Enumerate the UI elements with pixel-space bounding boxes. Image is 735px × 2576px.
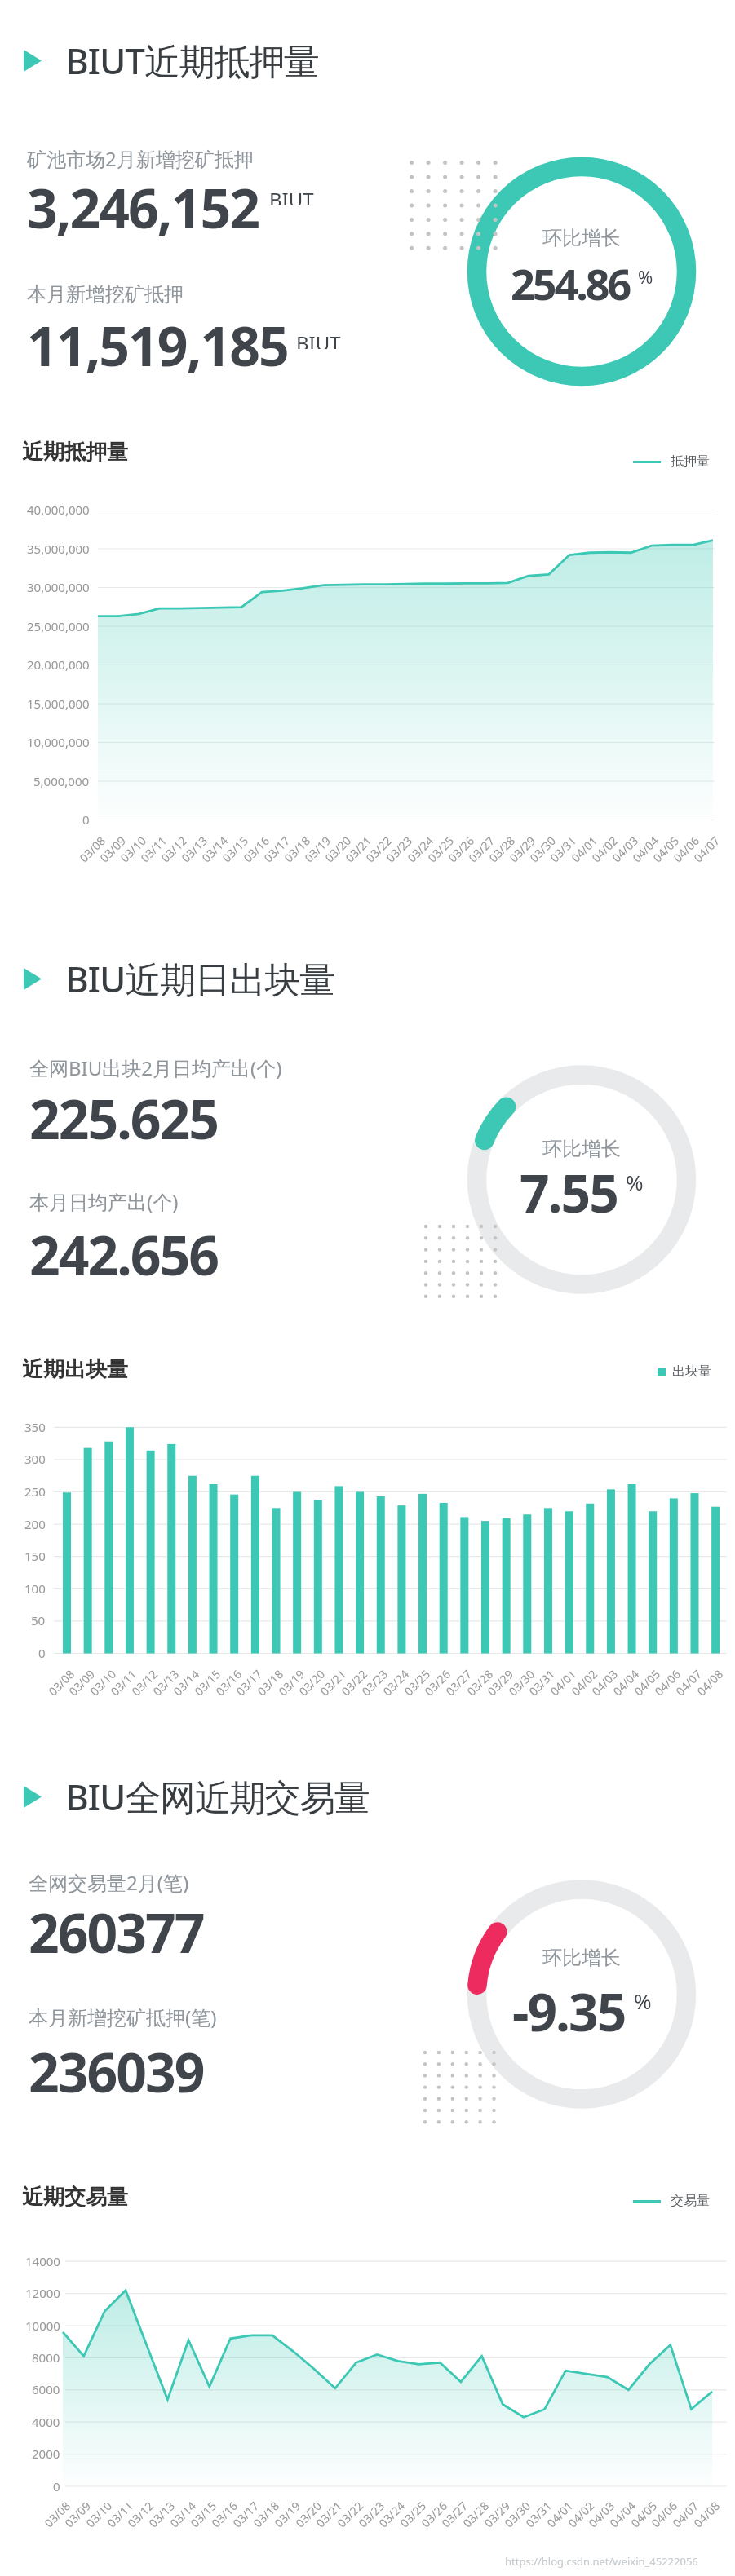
staticText: 04/04 — [629, 833, 661, 865]
staticText: 03/20 — [292, 2498, 324, 2530]
staticText: 交易量 — [671, 2193, 710, 2209]
staticText: 14000 — [25, 2253, 60, 2269]
staticText: 12000 — [25, 2285, 60, 2301]
staticText: 03/13 — [145, 2498, 178, 2530]
staticText: 03/22 — [362, 833, 395, 865]
staticText: 03/28 — [459, 2498, 492, 2530]
staticText: 03/29 — [481, 2498, 513, 2530]
staticText: 4000 — [32, 2414, 60, 2430]
staticText: 7.55 — [520, 1157, 618, 1222]
staticText: 03/31 — [522, 2498, 554, 2530]
staticText: 03/16 — [208, 2498, 240, 2530]
staticText: 50 — [31, 1612, 46, 1628]
staticText: 03/17 — [233, 1666, 265, 1698]
staticText: 03/24 — [375, 2498, 408, 2530]
staticText: 03/14 — [198, 833, 231, 865]
staticText: 0 — [38, 1645, 46, 1661]
staticText: 04/07 — [669, 2498, 701, 2530]
staticText: 254.86 — [511, 254, 630, 312]
staticText: 03/17 — [260, 833, 293, 865]
staticText: 10000 — [25, 2318, 60, 2334]
staticText: 03/28 — [463, 1666, 496, 1698]
staticText: 04/04 — [609, 1666, 642, 1698]
staticText: 04/01 — [547, 1666, 579, 1698]
staticText: 04/05 — [631, 1666, 663, 1698]
staticText: 04/05 — [627, 2498, 660, 2530]
staticText: 环比增长 — [542, 226, 621, 250]
staticText: 环比增长 — [542, 1946, 621, 1970]
staticText: 04/08 — [690, 2498, 723, 2530]
staticText: 03/20 — [321, 833, 354, 865]
staticText: 03/15 — [187, 2498, 219, 2530]
staticText: 03/13 — [178, 833, 210, 865]
staticText: 100 — [24, 1580, 46, 1597]
staticText: 04/03 — [609, 833, 641, 865]
staticText: 03/30 — [505, 1666, 537, 1698]
staticText: 本月新增挖矿抵押 — [27, 282, 184, 307]
staticText: 03/21 — [313, 2498, 345, 2530]
staticText: 300 — [24, 1451, 46, 1467]
staticText: 近期交易量 — [22, 2184, 128, 2210]
staticText: 20,000,000 — [27, 656, 90, 673]
staticText: 15,000,000 — [27, 696, 90, 712]
staticText: 350 — [24, 1419, 46, 1435]
staticText: 5,000,000 — [33, 773, 90, 789]
staticText: 03/26 — [445, 833, 477, 865]
button[interactable]: 抵押量 — [633, 450, 710, 473]
staticText: 04/01 — [568, 833, 600, 865]
staticText: 25,000,000 — [27, 618, 90, 634]
staticText: 04/01 — [543, 2498, 576, 2530]
staticText: 03/20 — [295, 1666, 328, 1698]
staticText: 03/27 — [438, 2498, 470, 2530]
staticText: 03/27 — [442, 1666, 475, 1698]
staticText: 全网交易量2月(笔) — [29, 1869, 189, 1893]
staticText: 0 — [82, 811, 90, 828]
staticText: 03/31 — [525, 1666, 558, 1698]
staticText: 03/16 — [212, 1666, 244, 1698]
staticText: 03/14 — [170, 1666, 202, 1698]
staticText: 03/21 — [317, 1666, 349, 1698]
staticText: 03/23 — [358, 1666, 391, 1698]
staticText: % — [626, 1168, 644, 1196]
staticText: 03/12 — [128, 1666, 160, 1698]
button[interactable]: 交易量 — [633, 2189, 710, 2212]
staticText: BIUT近期抵押量 — [65, 36, 319, 85]
staticText: 242.656 — [29, 1217, 219, 1291]
staticText: 03/19 — [301, 833, 333, 865]
staticText: 8000 — [32, 2349, 60, 2366]
staticText: 03/22 — [334, 2498, 366, 2530]
staticText: 04/02 — [568, 1666, 600, 1698]
staticText: 近期出块量 — [22, 1356, 128, 1382]
staticText: 03/15 — [219, 833, 251, 865]
staticText: 03/25 — [401, 1666, 433, 1698]
staticText: 03/24 — [404, 833, 436, 865]
staticText: 本月新增挖矿抵押(笔) — [29, 2004, 217, 2028]
staticText: 03/09 — [65, 1666, 98, 1698]
staticText: 236039 — [29, 2035, 204, 2108]
staticText: 全网BIU出块2月日均产出(个) — [29, 1054, 282, 1079]
staticText: 260377 — [29, 1895, 204, 1968]
staticText: 03/31 — [547, 833, 579, 865]
staticText: 03/15 — [191, 1666, 223, 1698]
staticText: % — [638, 264, 653, 289]
staticText: 10,000,000 — [27, 734, 90, 750]
staticText: 03/17 — [229, 2498, 262, 2530]
staticText: 03/14 — [166, 2498, 199, 2530]
staticText: 03/30 — [526, 833, 559, 865]
staticText: 03/27 — [465, 833, 497, 865]
staticText: 04/07 — [672, 1666, 705, 1698]
staticText: 03/10 — [82, 2498, 115, 2530]
staticText: https://blog.csdn.net/weixin_45222056 — [505, 2554, 698, 2569]
staticText: 2000 — [32, 2446, 60, 2462]
staticText: 03/18 — [281, 833, 313, 865]
staticText: 03/23 — [355, 2498, 387, 2530]
staticText: 04/06 — [651, 1666, 683, 1698]
staticText: 04/06 — [648, 2498, 680, 2530]
button[interactable]: 出块量 — [658, 1360, 711, 1383]
staticText: 04/03 — [585, 2498, 617, 2530]
staticText: 03/18 — [254, 1666, 286, 1698]
staticText: 03/28 — [485, 833, 518, 865]
staticText: 03/21 — [342, 833, 374, 865]
staticText: 本月日均产出(个) — [29, 1188, 179, 1213]
staticText: 03/19 — [271, 2498, 303, 2530]
